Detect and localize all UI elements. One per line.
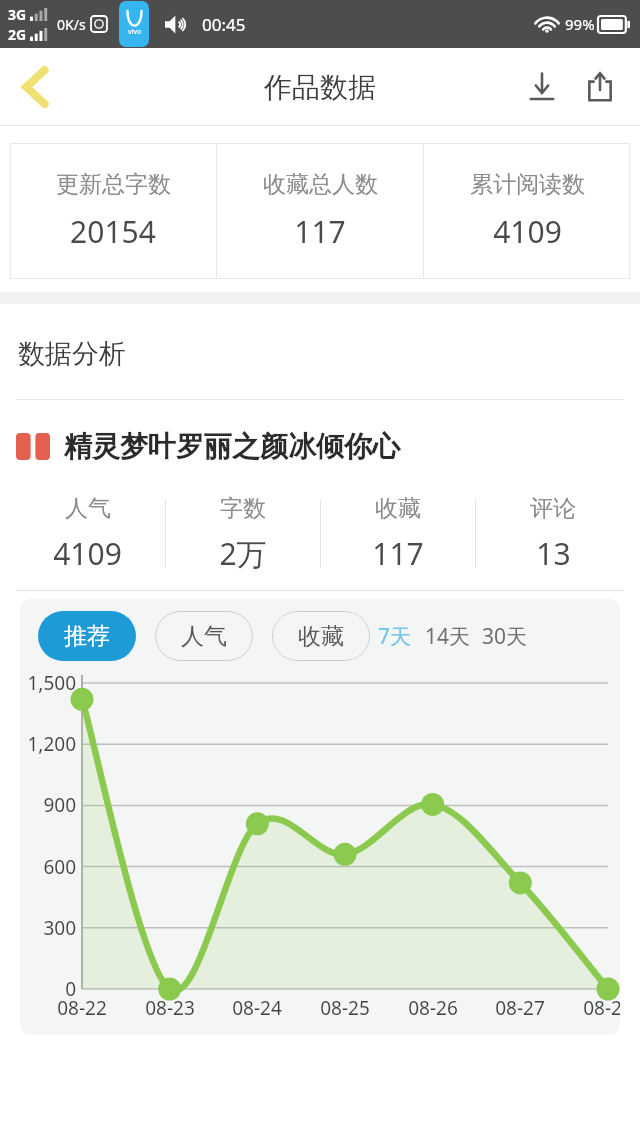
staticText: 20154	[70, 211, 156, 252]
button[interactable]: Share	[572, 59, 628, 115]
staticText: 600	[20, 854, 76, 880]
staticText: 2G	[8, 25, 27, 44]
button[interactable]: 评论	[476, 494, 630, 574]
staticText: 1,200	[20, 731, 76, 757]
staticText: 0	[20, 976, 76, 1002]
staticText: 字数	[220, 494, 266, 523]
button[interactable]: 30天	[482, 622, 528, 651]
staticText: 作品数据	[264, 70, 376, 105]
staticText: 00:45	[202, 13, 246, 36]
staticText: 收藏	[375, 494, 421, 523]
staticText: 08-28	[563, 995, 620, 1021]
button[interactable]: 更新总字数	[10, 143, 216, 279]
staticText: 08-27	[475, 995, 565, 1021]
staticText: 0K/s	[57, 15, 86, 34]
button[interactable]: 累计阅读数	[424, 143, 630, 279]
button[interactable]: 7天	[378, 622, 412, 651]
staticText: 117	[372, 533, 424, 574]
staticText: 117	[294, 211, 346, 252]
staticText: 2万	[219, 533, 267, 574]
button[interactable]: 收藏	[321, 494, 475, 574]
button[interactable]: 收藏总人数	[217, 143, 423, 279]
staticText: 更新总字数	[56, 170, 171, 199]
staticText: 人气	[181, 622, 227, 651]
staticText: vivo	[128, 27, 142, 37]
staticText: 99%	[565, 14, 595, 34]
staticText: 08-25	[300, 995, 390, 1021]
button[interactable]: Back	[4, 56, 66, 118]
staticText: 3G	[8, 5, 27, 24]
button[interactable]: 人气	[10, 494, 165, 574]
staticText: 08-26	[388, 995, 478, 1021]
staticText: 1,500	[20, 670, 76, 696]
button[interactable]: 字数	[166, 494, 320, 574]
staticText: 精灵梦叶罗丽之颜冰倾你心	[64, 429, 400, 464]
button[interactable]: 推荐	[38, 611, 136, 661]
staticText: 900	[20, 792, 76, 818]
staticText: 评论	[530, 494, 576, 523]
button[interactable]: Download	[514, 59, 570, 115]
staticText: 人气	[65, 494, 111, 523]
button[interactable]: 14天	[425, 622, 471, 651]
staticText: 收藏	[298, 622, 344, 651]
staticText: 4109	[493, 211, 562, 252]
button[interactable]: 精灵梦叶罗丽之颜冰倾你心	[16, 420, 628, 472]
staticText: 300	[20, 915, 76, 941]
staticText: 推荐	[64, 622, 110, 651]
staticText: 4109	[53, 533, 122, 574]
staticText: 收藏总人数	[263, 170, 378, 199]
staticText: 08-24	[212, 995, 302, 1021]
staticText: 08-23	[125, 995, 215, 1021]
staticText: 13	[536, 533, 571, 574]
button[interactable]: 人气	[155, 611, 253, 661]
staticText: 累计阅读数	[470, 170, 585, 199]
staticText: 数据分析	[18, 337, 126, 371]
button[interactable]: 收藏	[272, 611, 370, 661]
staticText: 08-22	[37, 995, 127, 1021]
